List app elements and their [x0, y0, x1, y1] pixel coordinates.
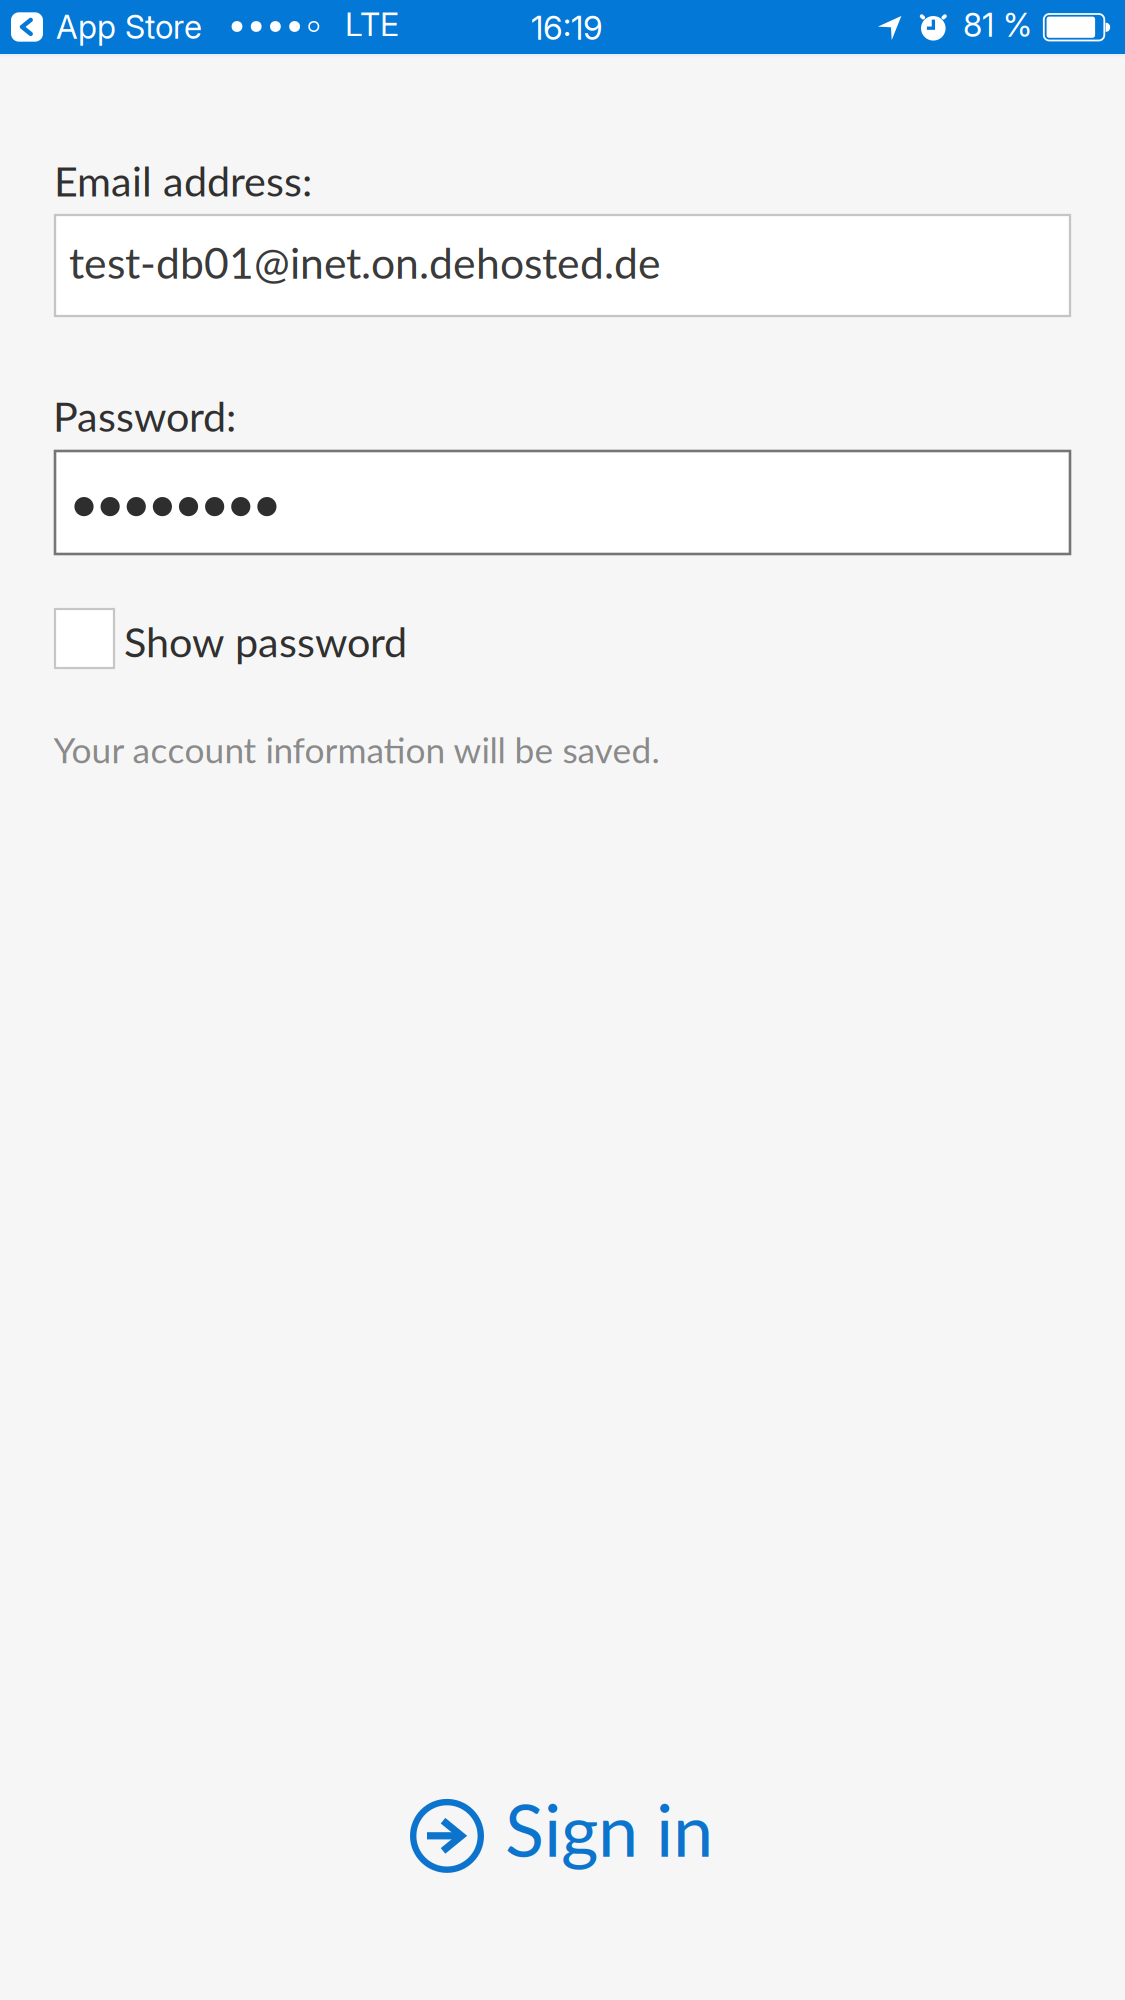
button[interactable]: test-db01@inet.on.dehosted.de — [55, 215, 1070, 316]
staticText: Show password — [124, 616, 407, 666]
staticText: Your account information will be saved. — [53, 728, 659, 771]
staticText: Email address: — [54, 156, 312, 205]
staticText: Sign in — [505, 1786, 713, 1872]
staticText: App Store — [56, 7, 202, 46]
button[interactable]: Sign in — [410, 1786, 720, 1886]
button[interactable]: Password — [55, 451, 1070, 554]
staticText: Password: — [53, 391, 236, 440]
staticText: 16:19 — [531, 8, 603, 48]
button[interactable]: Back to App Store — [11, 0, 202, 54]
staticText: 81 % — [963, 6, 1032, 45]
button[interactable]: Show password — [55, 609, 405, 675]
staticText: test-db01@inet.on.dehosted.de — [69, 237, 661, 288]
staticText: LTE — [345, 5, 399, 44]
